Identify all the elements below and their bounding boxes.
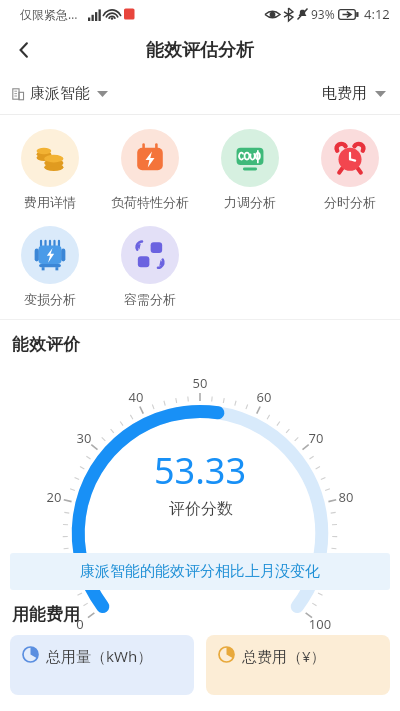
staticText: 能效评价 — [12, 334, 80, 355]
button[interactable]: 变损分析 — [0, 224, 100, 309]
button[interactable]: 负荷特性分析 — [100, 127, 200, 212]
button[interactable]: 总用量（kWh） — [10, 635, 194, 695]
button[interactable]: 康派智能的能效评分相比上月没变化 — [10, 553, 390, 590]
staticText: 4:12 — [364, 5, 390, 23]
button[interactable]: 总费用（¥） — [206, 635, 390, 695]
staticText: 93% — [311, 6, 335, 22]
button[interactable]: 力调分析 — [200, 127, 300, 212]
staticText: 用能费用 — [12, 604, 80, 625]
staticText: 评价分数 — [169, 499, 233, 519]
staticText: 负荷特性分析 — [111, 194, 189, 210]
staticText: 能效评估分析 — [146, 39, 254, 62]
staticText: 费用详情 — [24, 194, 76, 210]
staticText: 力调分析 — [224, 194, 276, 210]
button[interactable]: 分时分析 — [300, 127, 400, 212]
staticText: 70 — [304, 429, 328, 447]
staticText: 分时分析 — [324, 194, 376, 210]
button[interactable]: Back — [4, 30, 44, 70]
staticText: 20 — [42, 488, 66, 506]
staticText: 80 — [334, 488, 358, 506]
staticText: 60 — [252, 388, 276, 406]
button[interactable]: 电费用 — [320, 78, 388, 109]
staticText: 100 — [308, 615, 332, 633]
button[interactable]: 容需分析 — [100, 224, 200, 309]
button[interactable]: 康派智能 — [10, 78, 110, 109]
staticText: 总用量（kWh） — [46, 646, 153, 666]
staticText: 30 — [72, 429, 96, 447]
staticText: 容需分析 — [124, 291, 176, 307]
staticText: 电费用 — [322, 84, 367, 103]
staticText: 40 — [124, 388, 148, 406]
staticText: 康派智能的能效评分相比上月没变化 — [80, 562, 320, 581]
staticText: 50 — [188, 374, 212, 392]
staticText: 康派智能 — [30, 84, 90, 103]
staticText: 0 — [68, 615, 92, 633]
staticText: 变损分析 — [24, 291, 76, 307]
staticText: 53.33 — [154, 446, 247, 495]
button[interactable]: 费用详情 — [0, 127, 100, 212]
staticText: 仅限紧急… — [20, 6, 78, 22]
staticText: 总费用（¥） — [242, 646, 326, 666]
